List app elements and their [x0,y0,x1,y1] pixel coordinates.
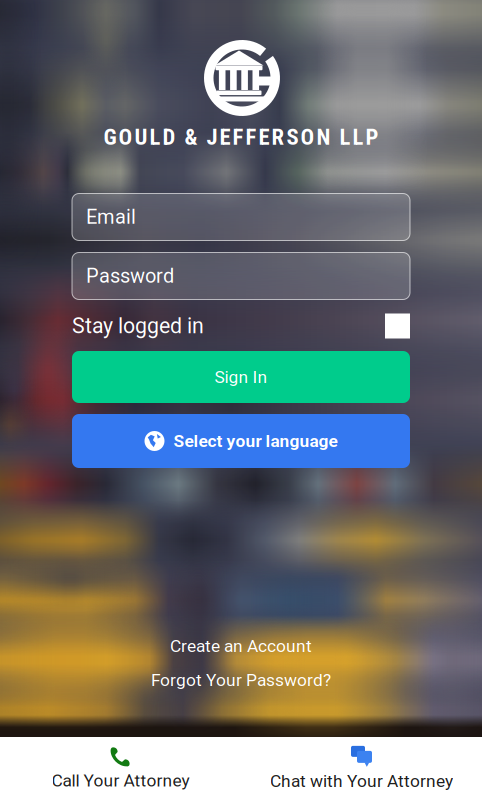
button[interactable]: Forgot Your Password? [111,663,371,697]
button[interactable]: Select your language [72,414,410,468]
button[interactable]: Create an Account [111,629,371,663]
staticText: GOULD & JEFFERSON LLP [103,124,378,150]
staticText: Forgot Your Password? [151,670,331,690]
button[interactable]: Chat with Your Attorney [241,737,482,800]
staticText: Sign In [214,367,267,387]
staticText: Email [86,205,136,229]
staticText: Create an Account [170,636,312,656]
staticText: Stay logged in [72,313,204,338]
staticText: Chat with Your Attorney [270,771,453,791]
staticText: Call Your Attorney [51,770,189,791]
button[interactable]: Call Your Attorney [0,737,241,800]
staticText: Select your language [173,431,337,451]
staticText: Password [86,264,174,288]
button[interactable]: Sign In [72,351,410,403]
